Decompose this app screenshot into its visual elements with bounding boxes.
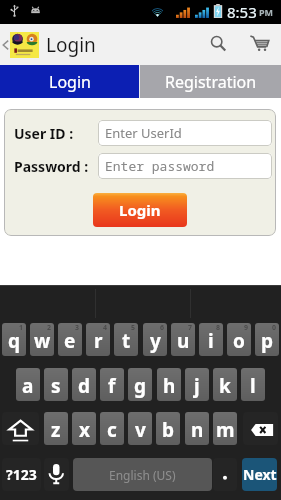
- button[interactable]: Next: [242, 458, 277, 491]
- staticText: Login: [46, 32, 96, 58]
- staticText: PM: [259, 6, 274, 18]
- staticText: n: [191, 417, 204, 443]
- staticText: v: [135, 417, 146, 443]
- staticText: a: [22, 373, 34, 399]
- staticText: b: [162, 417, 175, 443]
- button[interactable]: k: [213, 368, 237, 401]
- button[interactable]: Suggestion: [93, 285, 187, 323]
- staticText: 7: [188, 323, 193, 333]
- button[interactable]: ?123: [2, 458, 41, 491]
- button[interactable]: s: [44, 368, 68, 401]
- staticText: 3: [75, 323, 80, 333]
- staticText: Registration: [165, 71, 257, 93]
- button[interactable]: Suggestion: [0, 285, 93, 323]
- button[interactable]: z: [44, 412, 68, 445]
- staticText: u: [177, 328, 190, 354]
- button[interactable]: Enter password: [98, 153, 272, 179]
- button[interactable]: q: [2, 323, 26, 356]
- staticText: 1: [19, 323, 24, 333]
- staticText: p: [261, 328, 274, 354]
- staticText: j: [194, 373, 200, 399]
- button[interactable]: p: [255, 323, 279, 356]
- button[interactable]: i: [199, 323, 223, 356]
- button[interactable]: f: [100, 368, 124, 401]
- staticText: d: [78, 373, 91, 399]
- staticText: q: [8, 328, 21, 354]
- button[interactable]: Login: [93, 193, 187, 227]
- staticText: 8:53: [227, 2, 257, 22]
- staticText: Login: [49, 71, 91, 93]
- staticText: 6: [160, 323, 165, 333]
- button[interactable]: m: [213, 412, 237, 445]
- button[interactable]: a: [16, 368, 40, 401]
- button[interactable]: Period: [213, 458, 237, 491]
- staticText: Enter UserId: [105, 124, 182, 142]
- button[interactable]: v: [128, 412, 152, 445]
- button[interactable]: w: [30, 323, 54, 356]
- staticText: s: [51, 373, 61, 399]
- button[interactable]: e: [58, 323, 82, 356]
- button[interactable]: d: [72, 368, 96, 401]
- button[interactable]: Backspace: [243, 412, 278, 445]
- staticText: 0: [272, 323, 277, 333]
- button[interactable]: Suggestion: [187, 285, 281, 323]
- button[interactable]: y: [143, 323, 167, 356]
- staticText: 2: [47, 323, 52, 333]
- staticText: l: [250, 373, 256, 399]
- button[interactable]: b: [156, 412, 180, 445]
- staticText: Password :: [14, 157, 89, 176]
- staticText: 8: [216, 323, 221, 333]
- staticText: f: [108, 373, 116, 399]
- staticText: User ID :: [14, 124, 74, 143]
- staticText: w: [34, 328, 51, 354]
- button[interactable]: Shopping cart: [239, 24, 281, 65]
- staticText: 4: [103, 323, 108, 333]
- staticText: h: [163, 373, 176, 399]
- staticText: i: [208, 328, 214, 354]
- staticText: y: [150, 328, 161, 354]
- button[interactable]: Voice input: [44, 458, 69, 491]
- staticText: 9: [244, 323, 249, 333]
- staticText: English (US): [109, 467, 176, 483]
- staticText: Next: [243, 465, 277, 484]
- button[interactable]: Login: [0, 65, 139, 98]
- button[interactable]: h: [157, 368, 181, 401]
- button[interactable]: c: [100, 412, 124, 445]
- button[interactable]: Search: [197, 24, 239, 65]
- button[interactable]: Registration: [140, 65, 281, 98]
- button[interactable]: Up: [0, 32, 41, 58]
- button[interactable]: j: [185, 368, 209, 401]
- staticText: ?123: [6, 465, 37, 484]
- staticText: r: [94, 328, 103, 354]
- button[interactable]: t: [114, 323, 138, 356]
- staticText: o: [233, 328, 245, 354]
- button[interactable]: Enter UserId: [98, 120, 272, 146]
- button[interactable]: n: [185, 412, 209, 445]
- button[interactable]: Shift: [2, 412, 39, 445]
- button[interactable]: English (US): [73, 458, 212, 491]
- staticText: c: [107, 417, 117, 443]
- staticText: x: [79, 417, 90, 443]
- staticText: g: [134, 373, 147, 399]
- staticText: e: [64, 328, 76, 354]
- button[interactable]: o: [227, 323, 251, 356]
- button[interactable]: u: [171, 323, 195, 356]
- button[interactable]: l: [241, 368, 265, 401]
- staticText: Enter password: [105, 157, 215, 175]
- staticText: m: [216, 417, 235, 443]
- staticText: 5: [131, 323, 136, 333]
- button[interactable]: r: [86, 323, 110, 356]
- button[interactable]: g: [128, 368, 152, 401]
- staticText: k: [219, 373, 231, 399]
- staticText: z: [51, 417, 61, 443]
- staticText: t: [122, 328, 131, 354]
- button[interactable]: x: [72, 412, 96, 445]
- staticText: Login: [119, 200, 161, 220]
